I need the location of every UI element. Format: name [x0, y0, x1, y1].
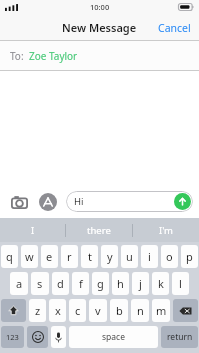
- staticText: h: [117, 276, 124, 291]
- staticText: n: [137, 303, 144, 318]
- button[interactable]: I'm: [133, 218, 199, 242]
- staticText: return: [167, 331, 193, 343]
- staticText: i: [148, 249, 151, 264]
- staticText: k: [158, 276, 164, 291]
- staticText: c: [75, 303, 81, 318]
- staticText: g: [97, 276, 104, 291]
- button[interactable]: Take photo: [8, 190, 31, 213]
- staticText: r: [67, 249, 72, 264]
- staticText: there: [87, 224, 111, 237]
- button[interactable]: p: [181, 245, 198, 268]
- staticText: m: [156, 303, 167, 318]
- button[interactable]: v: [89, 299, 107, 322]
- staticText: t: [88, 249, 92, 264]
- button[interactable]: s: [31, 272, 49, 295]
- button[interactable]: z: [29, 299, 46, 322]
- button[interactable]: 123: [1, 326, 24, 348]
- button[interactable]: i: [141, 245, 158, 268]
- button[interactable]: w: [21, 245, 38, 268]
- staticText: Zoe Taylor: [29, 49, 78, 63]
- button[interactable]: Backspace: [173, 299, 198, 322]
- button[interactable]: n: [131, 299, 149, 322]
- button[interactable]: k: [152, 272, 169, 295]
- staticText: b: [116, 303, 123, 318]
- staticText: j: [139, 276, 142, 291]
- button[interactable]: there: [66, 218, 132, 242]
- button[interactable]: Dictation: [51, 326, 66, 348]
- staticText: f: [79, 276, 83, 291]
- button[interactable]: y: [101, 245, 118, 268]
- staticText: a: [16, 276, 23, 291]
- staticText: w: [25, 249, 34, 264]
- button[interactable]: d: [52, 272, 69, 295]
- button[interactable]: a: [10, 272, 28, 295]
- staticText: q: [6, 249, 13, 264]
- staticText: v: [95, 303, 101, 318]
- button[interactable]: Send: [174, 193, 191, 210]
- staticText: Cancel: [158, 21, 191, 35]
- staticText: l: [179, 276, 182, 291]
- button[interactable]: r: [61, 245, 78, 268]
- staticText: To:: [10, 49, 24, 63]
- staticText: 10:00: [90, 2, 110, 12]
- button[interactable]: I: [0, 218, 65, 242]
- staticText: u: [126, 249, 133, 264]
- staticText: d: [57, 276, 64, 291]
- button[interactable]: f: [72, 272, 89, 295]
- staticText: z: [35, 303, 41, 318]
- staticText: y: [107, 249, 113, 264]
- button[interactable]: Cancel: [150, 14, 199, 41]
- button[interactable]: h: [112, 272, 129, 295]
- button[interactable]: Hi: [66, 191, 193, 212]
- staticText: e: [46, 249, 53, 264]
- button[interactable]: e: [41, 245, 58, 268]
- staticText: space: [102, 331, 125, 343]
- button[interactable]: c: [69, 299, 86, 322]
- button[interactable]: x: [49, 299, 66, 322]
- button[interactable]: u: [121, 245, 138, 268]
- button[interactable]: t: [81, 245, 98, 268]
- button[interactable]: l: [172, 272, 189, 295]
- button[interactable]: Shift: [1, 299, 26, 322]
- staticText: I'm: [159, 224, 173, 237]
- button[interactable]: g: [92, 272, 109, 295]
- staticText: s: [37, 276, 43, 291]
- staticText: o: [166, 249, 173, 264]
- staticText: p: [186, 249, 193, 264]
- staticText: x: [55, 303, 61, 318]
- button[interactable]: o: [161, 245, 178, 268]
- staticText: I: [31, 224, 35, 237]
- button[interactable]: space: [69, 326, 158, 348]
- button[interactable]: To:: [0, 41, 199, 70]
- staticText: New Message: [62, 20, 137, 35]
- button[interactable]: return: [161, 326, 198, 348]
- button[interactable]: App Store: [37, 191, 59, 213]
- button[interactable]: j: [132, 272, 149, 295]
- staticText: 123: [6, 332, 19, 342]
- button[interactable]: q: [1, 245, 18, 268]
- button[interactable]: b: [110, 299, 128, 322]
- staticText: Hi: [74, 195, 84, 208]
- button[interactable]: m: [152, 299, 170, 322]
- button[interactable]: Emoji keyboard: [27, 326, 48, 348]
